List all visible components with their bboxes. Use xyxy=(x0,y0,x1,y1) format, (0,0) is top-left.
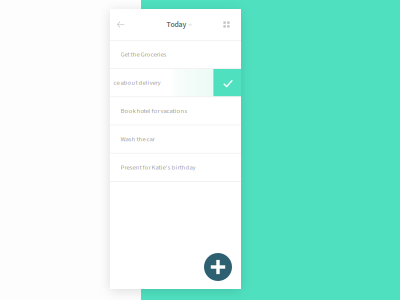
staticText: Book hotel for vacations xyxy=(121,106,188,116)
button[interactable]: ce about delivery xyxy=(110,69,241,97)
button[interactable]: Present for Katie's birthday xyxy=(110,154,241,182)
button[interactable]: Get the Groceries xyxy=(110,41,241,69)
button[interactable]: Book hotel for vacations xyxy=(110,97,241,125)
button[interactable]: Add task xyxy=(204,253,232,281)
staticText: Present for Katie's birthday xyxy=(121,163,196,172)
staticText: Get the Groceries xyxy=(121,50,167,59)
button[interactable]: Wash the car xyxy=(110,125,241,154)
button[interactable]: Today xyxy=(166,9,186,40)
staticText: ce about delivery xyxy=(113,78,160,87)
staticText: Wash the car xyxy=(121,134,155,144)
staticText: Today xyxy=(166,19,186,30)
button[interactable]: Back xyxy=(110,9,136,40)
button[interactable]: Grid view xyxy=(215,9,241,40)
